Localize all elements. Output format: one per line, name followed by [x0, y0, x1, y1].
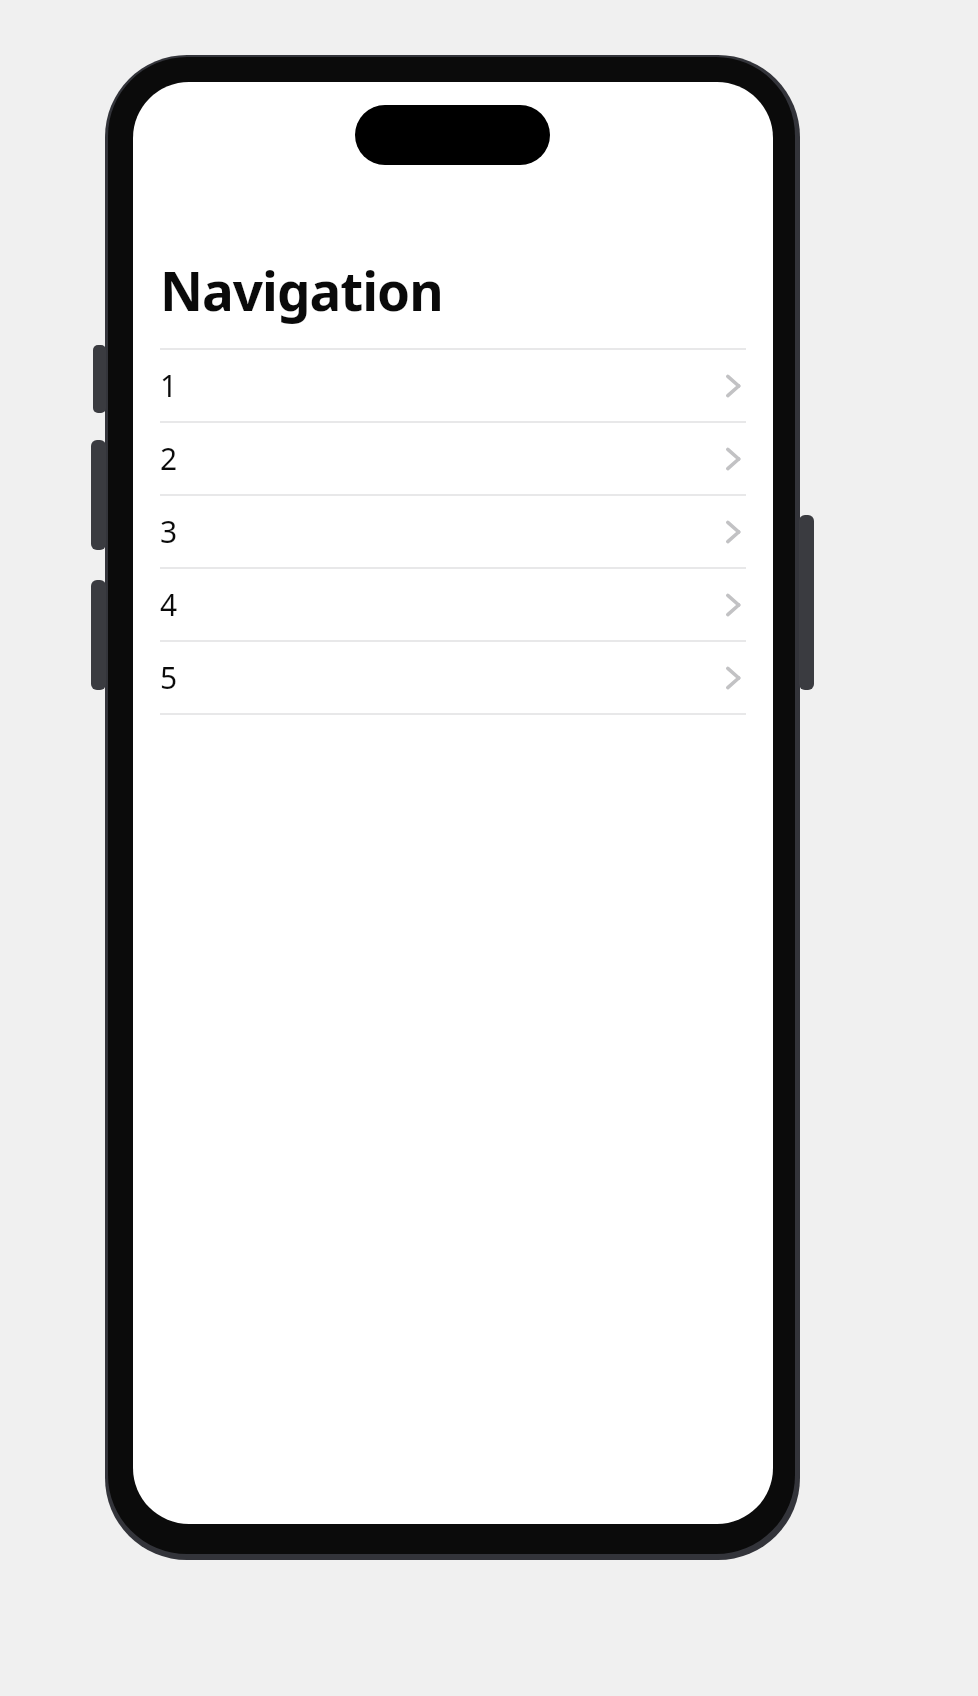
button[interactable]: 5	[160, 642, 746, 713]
button[interactable]: 1	[160, 350, 746, 421]
staticText: 3	[160, 511, 178, 552]
button[interactable]: 2	[160, 423, 746, 494]
staticText: 1	[160, 365, 178, 406]
staticText: 5	[160, 657, 178, 698]
other: Open	[720, 442, 746, 476]
staticText: Navigation	[160, 254, 443, 326]
other: Open	[720, 369, 746, 403]
other: Open	[720, 515, 746, 549]
other: Open	[720, 588, 746, 622]
other: Open	[720, 661, 746, 695]
staticText: 2	[160, 438, 178, 479]
staticText: 4	[160, 584, 178, 625]
button[interactable]: 4	[160, 569, 746, 640]
button[interactable]: 3	[160, 496, 746, 567]
